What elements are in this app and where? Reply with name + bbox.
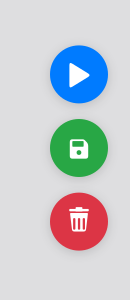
button[interactable]: Delete <box>50 193 108 251</box>
button[interactable]: Play <box>50 45 108 103</box>
button[interactable]: Save <box>50 119 108 177</box>
